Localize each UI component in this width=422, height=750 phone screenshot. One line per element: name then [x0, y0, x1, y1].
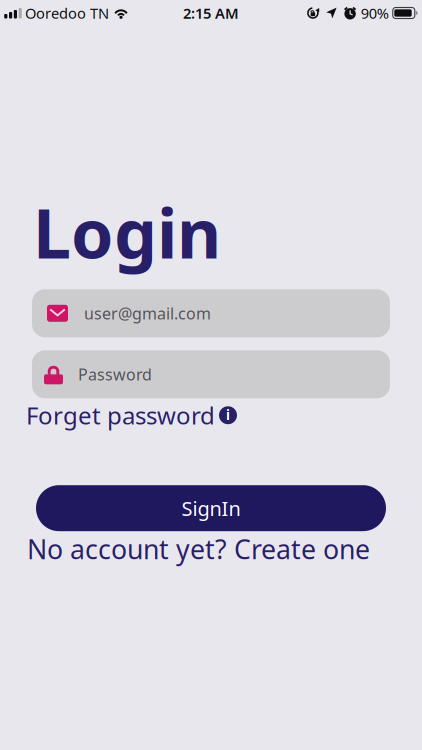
staticText: Forget password [26, 399, 215, 431]
staticText: Login [33, 187, 221, 277]
button[interactable]: Password [32, 350, 390, 398]
button[interactable]: user@gmail.com [32, 289, 390, 337]
staticText: No account yet? Create one [27, 531, 370, 567]
button[interactable]: Password info [215, 406, 237, 424]
staticText: Password [78, 364, 152, 385]
staticText: 2:15 AM [183, 3, 239, 23]
staticText: Ooredoo TN [25, 3, 109, 23]
staticText: user@gmail.com [84, 303, 211, 324]
staticText: 90% [361, 3, 389, 23]
button[interactable]: Forget password [26, 399, 215, 431]
button[interactable]: No account yet? Create one [27, 531, 370, 567]
staticText: SignIn [181, 495, 240, 521]
staticText: i [226, 406, 230, 424]
button[interactable]: SignIn [36, 485, 386, 531]
